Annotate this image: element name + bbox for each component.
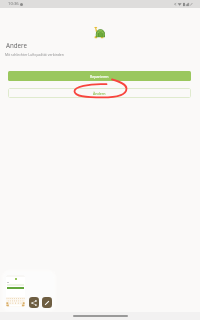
staticText: Andere [6, 41, 27, 49]
staticText: Mit schlechter Luftqualität verbinden [5, 52, 64, 57]
button[interactable]: Share [29, 297, 39, 308]
staticText: 10:36 [8, 1, 19, 7]
button[interactable]: Edit [42, 297, 52, 308]
staticText: Ändern [93, 91, 106, 96]
staticText: Reparieren [90, 74, 109, 79]
button[interactable]: Screenshot preview [6, 275, 25, 307]
button[interactable]: Reparieren [8, 71, 191, 81]
button[interactable]: Ändern [8, 88, 191, 98]
